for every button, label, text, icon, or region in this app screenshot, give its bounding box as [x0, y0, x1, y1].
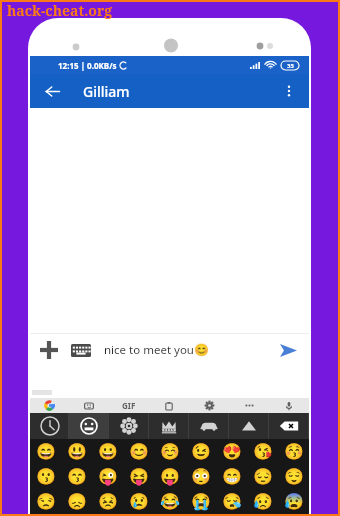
- button[interactable]: 😉: [185, 439, 216, 464]
- staticText: 😰: [284, 492, 304, 511]
- staticText: 😪: [222, 492, 242, 511]
- button[interactable]: Nature: [109, 413, 149, 439]
- button[interactable]: Clipboard: [149, 398, 189, 413]
- staticText: 😜: [98, 467, 118, 486]
- button[interactable]: Food: [149, 413, 189, 439]
- staticText: 35: [287, 62, 294, 70]
- staticText: 😘: [253, 442, 273, 461]
- button[interactable]: Settings: [189, 398, 229, 413]
- button[interactable]: 😊: [123, 439, 154, 464]
- button[interactable]: 😔: [247, 464, 278, 489]
- staticText: nice to meet you: [104, 342, 194, 358]
- button[interactable]: 😪: [216, 489, 247, 514]
- staticText: 😗: [36, 467, 56, 486]
- staticText: 😞: [67, 492, 87, 511]
- staticText: 😚: [284, 442, 304, 461]
- button[interactable]: 😌: [278, 464, 309, 489]
- button[interactable]: 😥: [247, 489, 278, 514]
- button[interactable]: 😄: [30, 439, 61, 464]
- button[interactable]: 😞: [61, 489, 92, 514]
- staticText: 😁: [222, 467, 242, 486]
- button[interactable]: 😘: [247, 439, 278, 464]
- button[interactable]: 😭: [185, 489, 216, 514]
- button[interactable]: 😃: [61, 439, 92, 464]
- button[interactable]: 😢: [123, 489, 154, 514]
- staticText: 😃: [67, 442, 87, 461]
- button[interactable]: Travel: [189, 413, 229, 439]
- staticText: 😙: [67, 467, 87, 486]
- staticText: ☺️: [160, 442, 180, 461]
- button[interactable]: 😂: [154, 489, 185, 514]
- staticText: 😍: [222, 442, 242, 461]
- button[interactable]: Keyboard: [68, 337, 94, 363]
- button[interactable]: More: [229, 398, 269, 413]
- staticText: 😛: [160, 467, 180, 486]
- button[interactable]: 😗: [30, 464, 61, 489]
- button[interactable]: 😀: [92, 439, 123, 464]
- button[interactable]: 😝: [123, 464, 154, 489]
- staticText: 😉: [191, 442, 211, 461]
- staticText: 😥: [253, 492, 273, 511]
- button[interactable]: Recent: [30, 413, 69, 439]
- button[interactable]: 😁: [216, 464, 247, 489]
- button[interactable]: Backspace: [269, 413, 309, 439]
- staticText: 12:15 | 0.0KB/s: [58, 60, 117, 71]
- button[interactable]: 😚: [278, 439, 309, 464]
- button[interactable]: 😣: [92, 489, 123, 514]
- button[interactable]: Smileys: [69, 413, 109, 439]
- button[interactable]: 😰: [278, 489, 309, 514]
- staticText: 😔: [253, 467, 273, 486]
- staticText: 😊: [129, 442, 149, 461]
- staticText: GIF: [122, 400, 136, 411]
- button[interactable]: Google: [30, 398, 69, 413]
- staticText: Gilliam: [83, 82, 130, 101]
- button[interactable]: Back: [38, 77, 66, 105]
- button[interactable]: Add attachment: [37, 338, 61, 362]
- staticText: 😊: [194, 343, 209, 357]
- button[interactable]: More options: [275, 77, 303, 105]
- button[interactable]: 😳: [185, 464, 216, 489]
- button[interactable]: Voice input: [269, 398, 309, 413]
- staticText: 😌: [284, 467, 304, 486]
- button[interactable]: 😍: [216, 439, 247, 464]
- staticText: 😂: [160, 492, 180, 511]
- staticText: 😳: [191, 467, 211, 486]
- staticText: 😢: [129, 492, 149, 511]
- staticText: 😀: [98, 442, 118, 461]
- staticText: 😭: [191, 492, 211, 511]
- button[interactable]: Send: [274, 336, 302, 364]
- button[interactable]: ☺️: [154, 439, 185, 464]
- staticText: 😒: [36, 492, 56, 511]
- button[interactable]: GIF: [109, 398, 149, 413]
- button[interactable]: Stickers: [69, 398, 109, 413]
- button[interactable]: 😒: [30, 489, 61, 514]
- staticText: hack-cheat.org: [7, 1, 113, 20]
- button[interactable]: 😛: [154, 464, 185, 489]
- button[interactable]: 😙: [61, 464, 92, 489]
- staticText: 😣: [98, 492, 118, 511]
- staticText: 😄: [36, 442, 56, 461]
- button[interactable]: Symbols: [229, 413, 269, 439]
- button[interactable]: 😜: [92, 464, 123, 489]
- staticText: 😝: [129, 467, 149, 486]
